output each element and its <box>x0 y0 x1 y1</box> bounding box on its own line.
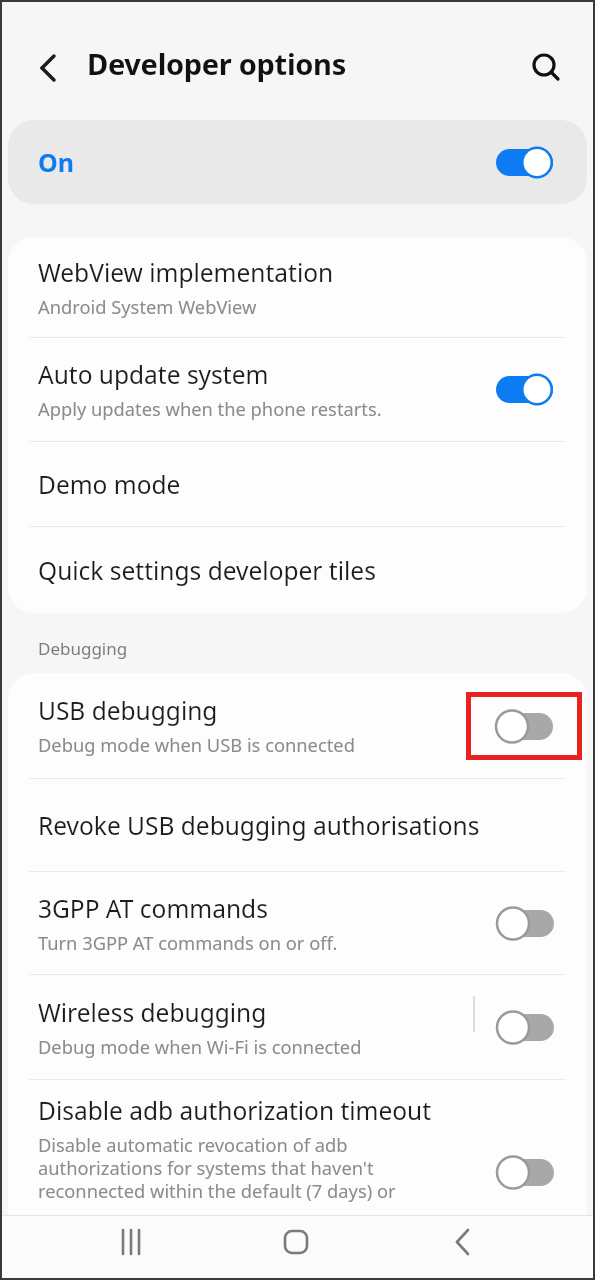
staticText: 3GPP AT commands <box>38 892 268 925</box>
staticText: Auto update system <box>38 358 269 391</box>
staticText: Apply updates when the phone restarts. <box>38 396 382 421</box>
staticText: Debug mode when Wi-Fi is connected <box>38 1034 362 1059</box>
staticText: Android System WebView <box>38 294 257 319</box>
staticText: Disable adb authorization timeout <box>38 1094 432 1127</box>
button[interactable]: Disable adb authorization timeout <box>8 1080 587 1215</box>
button[interactable]: On <box>8 120 587 204</box>
staticText: WebView implementation <box>38 256 334 289</box>
staticText: USB debugging <box>38 694 218 727</box>
staticText: Disable automatic revocation of adb auth… <box>38 1132 396 1203</box>
staticText: Demo mode <box>38 468 181 501</box>
button[interactable]: Revoke USB debugging authorisations <box>8 779 587 871</box>
button[interactable]: USB debugging <box>8 673 587 778</box>
button[interactable] <box>272 1218 320 1266</box>
button[interactable] <box>107 1218 155 1266</box>
staticText: Turn 3GPP AT commands on or off. <box>38 930 338 955</box>
staticText: Debugging <box>38 637 128 660</box>
button[interactable] <box>440 1218 488 1266</box>
button[interactable]: WebView implementation <box>8 237 587 337</box>
button[interactable]: Auto update system <box>8 338 587 441</box>
button[interactable]: 3GPP AT commands <box>8 872 587 974</box>
button[interactable]: Demo mode <box>8 442 587 526</box>
staticText: Developer options <box>87 44 346 83</box>
button[interactable]: Quick settings developer tiles <box>8 527 587 613</box>
button[interactable] <box>522 44 570 92</box>
staticText: Debug mode when USB is connected <box>38 732 355 757</box>
staticText: Revoke USB debugging authorisations <box>38 809 480 842</box>
staticText: On <box>38 145 75 179</box>
button[interactable] <box>24 44 72 92</box>
button[interactable]: Wireless debugging <box>8 975 587 1079</box>
staticText: Quick settings developer tiles <box>38 554 376 587</box>
staticText: Wireless debugging <box>38 996 267 1029</box>
